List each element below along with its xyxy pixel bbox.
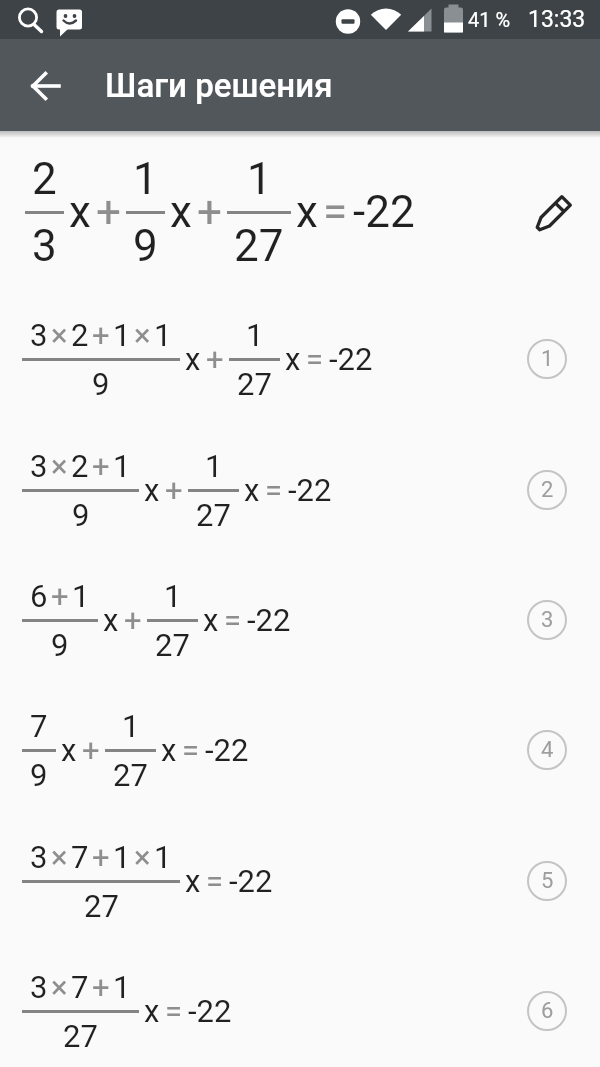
staticText: = bbox=[224, 602, 242, 638]
staticText: 27 bbox=[237, 366, 272, 402]
staticText: -22 bbox=[353, 186, 415, 238]
staticText: 1 bbox=[113, 317, 131, 353]
staticText: 1 bbox=[541, 346, 554, 372]
staticText: + bbox=[124, 602, 142, 638]
staticText: + bbox=[92, 317, 110, 353]
staticText: 9 bbox=[30, 757, 48, 793]
staticText: + bbox=[165, 472, 183, 508]
staticText: x bbox=[103, 602, 119, 638]
staticText: 41 % bbox=[468, 8, 511, 31]
staticText: x bbox=[144, 993, 160, 1029]
staticText: 2 bbox=[32, 153, 57, 205]
staticText: -22 bbox=[229, 863, 273, 899]
staticText: × bbox=[51, 317, 68, 353]
staticText: = bbox=[165, 993, 183, 1029]
staticText: = bbox=[206, 863, 224, 899]
staticText: 3 bbox=[30, 839, 48, 875]
staticText: = bbox=[182, 732, 200, 768]
staticText: 3 bbox=[30, 317, 48, 353]
staticText: -22 bbox=[205, 732, 249, 768]
staticText: x bbox=[161, 732, 177, 768]
staticText: 1 bbox=[247, 153, 272, 205]
staticText: 2 bbox=[71, 317, 89, 353]
staticText: Шаги решения bbox=[105, 66, 333, 105]
staticText: 1 bbox=[154, 317, 172, 353]
staticText: 1 bbox=[205, 448, 223, 484]
staticText: 1 bbox=[133, 153, 158, 205]
staticText: + bbox=[51, 578, 69, 614]
staticText: 9 bbox=[92, 366, 110, 402]
staticText: 7 bbox=[71, 969, 89, 1005]
staticText: 2 bbox=[71, 448, 89, 484]
staticText: 1 bbox=[72, 578, 90, 614]
staticText: + bbox=[82, 732, 100, 768]
staticText: 6 bbox=[30, 578, 48, 614]
staticText: 27 bbox=[113, 757, 148, 793]
staticText: x bbox=[69, 186, 91, 238]
staticText: x bbox=[185, 863, 201, 899]
staticText: 6 bbox=[541, 998, 554, 1024]
staticText: 27 bbox=[84, 888, 119, 924]
staticText: x bbox=[185, 341, 201, 377]
staticText: 1 bbox=[164, 578, 182, 614]
staticText: 3 bbox=[541, 607, 554, 633]
staticText: x bbox=[144, 472, 160, 508]
staticText: 27 bbox=[196, 497, 231, 533]
staticText: 1 bbox=[154, 839, 172, 875]
staticText: x bbox=[203, 602, 219, 638]
staticText: × bbox=[51, 448, 68, 484]
staticText: x bbox=[285, 341, 301, 377]
staticText: -22 bbox=[329, 341, 373, 377]
staticText: 13:33 bbox=[528, 6, 586, 33]
staticText: 7 bbox=[30, 708, 48, 744]
staticText: 27 bbox=[155, 627, 190, 663]
staticText: + bbox=[92, 839, 110, 875]
staticText: 2 bbox=[541, 477, 554, 503]
staticText: x bbox=[61, 732, 77, 768]
staticText: 4 bbox=[541, 737, 554, 763]
staticText: × bbox=[51, 839, 68, 875]
staticText: + bbox=[92, 969, 110, 1005]
staticText: 1 bbox=[122, 708, 140, 744]
staticText: x bbox=[244, 472, 260, 508]
staticText: 1 bbox=[246, 317, 264, 353]
staticText: 1 bbox=[113, 969, 131, 1005]
staticText: 27 bbox=[234, 220, 284, 272]
staticText: = bbox=[265, 472, 283, 508]
staticText: + bbox=[197, 186, 222, 238]
staticText: 3 bbox=[32, 220, 57, 272]
staticText: + bbox=[96, 186, 121, 238]
staticText: 3 bbox=[30, 448, 48, 484]
staticText: x bbox=[170, 186, 192, 238]
staticText: = bbox=[323, 186, 348, 238]
staticText: 9 bbox=[133, 220, 158, 272]
staticText: 9 bbox=[72, 497, 90, 533]
staticText: -22 bbox=[247, 602, 291, 638]
staticText: × bbox=[51, 969, 68, 1005]
staticText: + bbox=[206, 341, 224, 377]
staticText: 7 bbox=[71, 839, 89, 875]
staticText: -22 bbox=[288, 472, 332, 508]
staticText: 9 bbox=[51, 627, 69, 663]
staticText: 1 bbox=[113, 839, 131, 875]
staticText: 27 bbox=[63, 1018, 98, 1054]
staticText: 1 bbox=[113, 448, 131, 484]
staticText: 5 bbox=[541, 868, 554, 894]
staticText: = bbox=[306, 341, 324, 377]
staticText: × bbox=[134, 317, 151, 353]
staticText: 3 bbox=[30, 969, 48, 1005]
staticText: -22 bbox=[188, 993, 232, 1029]
staticText: x bbox=[296, 186, 318, 238]
staticText: + bbox=[92, 448, 110, 484]
staticText: × bbox=[134, 839, 151, 875]
